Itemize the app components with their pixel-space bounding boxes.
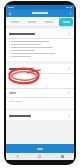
button[interactable]: More options <box>67 10 74 17</box>
button[interactable] <box>6 64 74 73</box>
button[interactable] <box>6 111 74 120</box>
button[interactable] <box>57 17 74 26</box>
button[interactable] <box>40 17 57 26</box>
button[interactable]: Recent apps <box>51 153 74 160</box>
button[interactable] <box>6 144 74 153</box>
button[interactable] <box>6 89 74 97</box>
button[interactable] <box>6 17 23 26</box>
button[interactable] <box>6 29 74 38</box>
button[interactable] <box>6 74 74 88</box>
button[interactable]: Back <box>6 153 28 160</box>
button[interactable]: Back <box>6 10 13 17</box>
button[interactable]: Home <box>28 153 51 160</box>
button[interactable] <box>23 17 40 26</box>
